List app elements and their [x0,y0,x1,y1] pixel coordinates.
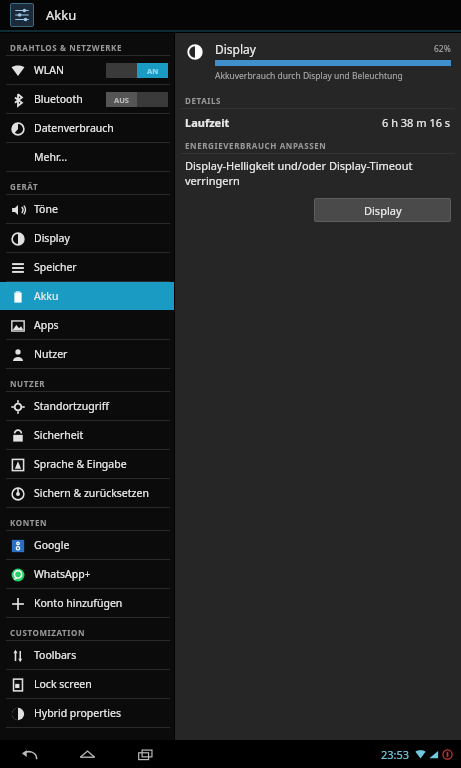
button[interactable]: WhatsApp+ [0,560,174,588]
staticText: 23:53 [381,747,410,762]
staticText: ENERGIEVERBRAUCH ANPASSEN [185,140,327,151]
button[interactable]: Apps [0,311,174,339]
button[interactable]: WLAN [0,56,174,84]
staticText: WLAN [34,63,64,77]
staticText: Display-Helligkeit und/oder Display-Time… [185,158,451,188]
staticText: Display [215,41,256,57]
staticText: Lock screen [34,677,92,691]
staticText: Google [34,538,70,552]
staticText: Nutzer [34,347,68,361]
button[interactable]: Akku [0,282,174,310]
button[interactable]: Zurück [14,740,44,768]
button[interactable]: Sichern & zurücksetzen [0,479,174,507]
button[interactable]: Konto hinzufügen [0,589,174,617]
button[interactable]: Display [0,224,174,252]
staticText: AN [147,66,159,76]
staticText: Display [34,231,70,245]
button[interactable]: Laufzeit [175,109,461,135]
button[interactable]: Sicherheit [0,421,174,449]
button[interactable]: AN [106,63,168,78]
staticText: Toolbars [34,648,77,662]
button[interactable]: Display [314,198,451,222]
staticText: 62% [434,43,451,55]
staticText: Akku [34,289,59,303]
staticText: Akkuverbrauch durch Display und Beleucht… [215,70,403,82]
button[interactable]: Speicher [0,253,174,281]
staticText: Sichern & zurücksetzen [34,486,149,500]
staticText: CUSTOMIZATION [10,627,85,638]
button[interactable]: Toolbars [0,641,174,669]
staticText: Speicher [34,260,77,274]
staticText: DETAILS [185,95,222,106]
staticText: NUTZER [10,378,46,389]
staticText: Datenverbrauch [34,121,114,135]
button[interactable]: Zuletzt verwendet [130,740,160,768]
staticText: Mehr... [34,150,68,164]
staticText: 6 h 38 m 16 s [382,115,451,130]
button[interactable]: AUS [106,92,168,107]
button[interactable]: Bluetooth [0,85,174,113]
button[interactable]: Nutzer [0,340,174,368]
staticText: AUS [114,95,129,105]
button[interactable]: Lock screen [0,670,174,698]
button[interactable]: Einstellungen [10,3,34,27]
staticText: WhatsApp+ [34,567,91,581]
staticText: Bluetooth [34,92,83,106]
staticText: Akku [46,6,77,24]
staticText: Töne [34,202,58,216]
staticText: Konto hinzufügen [34,596,123,610]
staticText: Display [364,203,402,218]
button[interactable]: Töne [0,195,174,223]
staticText: DRAHTLOS & NETZWERKE [10,42,123,53]
staticText: KONTEN [10,517,48,528]
staticText: GERÄT [10,181,39,192]
staticText: Sicherheit [34,428,84,442]
staticText: Sprache & Eingabe [34,457,127,471]
button[interactable]: Google [0,531,174,559]
button[interactable]: Hybrid properties [0,699,174,727]
staticText: Apps [34,318,59,332]
button[interactable]: Datenverbrauch [0,114,174,142]
button[interactable]: Standortzugriff [0,392,174,420]
staticText: Hybrid properties [34,706,121,720]
staticText: Standortzugriff [34,399,110,413]
button[interactable]: Sprache & Eingabe [0,450,174,478]
button[interactable]: Startbildschirm [72,740,102,768]
button[interactable]: Mehr... [0,143,174,171]
staticText: Laufzeit [185,115,230,130]
